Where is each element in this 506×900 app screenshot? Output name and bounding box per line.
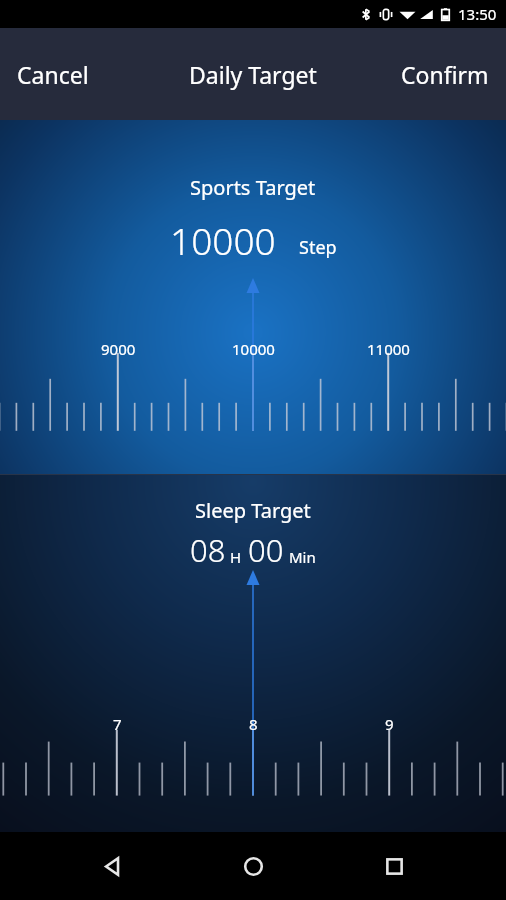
button[interactable]: Back xyxy=(83,837,141,895)
staticText: 08 xyxy=(190,529,226,571)
staticText: 11000 xyxy=(367,339,410,359)
staticText: 13:50 xyxy=(458,4,497,24)
staticText: Confirm xyxy=(401,59,489,90)
staticText: 9 xyxy=(385,714,394,734)
button[interactable]: Daily Target xyxy=(179,49,327,100)
button[interactable]: Cancel xyxy=(0,43,106,106)
button[interactable]: Confirm xyxy=(384,43,506,106)
staticText: 7 xyxy=(113,714,122,734)
staticText: Min xyxy=(289,547,316,567)
staticText: 00 xyxy=(248,529,284,571)
button[interactable]: Recent apps xyxy=(365,837,423,895)
button[interactable]: Home xyxy=(224,837,282,895)
staticText: 8 xyxy=(249,714,258,734)
staticText: 9000 xyxy=(101,339,136,359)
staticText: H xyxy=(230,547,242,567)
staticText: Sleep Target xyxy=(195,497,311,524)
staticText: 10000 xyxy=(170,215,276,265)
staticText: Cancel xyxy=(17,59,89,90)
staticText: Sports Target xyxy=(190,174,316,201)
staticText: Daily Target xyxy=(189,59,317,90)
staticText: 10000 xyxy=(232,339,275,359)
staticText: Step xyxy=(299,235,337,260)
